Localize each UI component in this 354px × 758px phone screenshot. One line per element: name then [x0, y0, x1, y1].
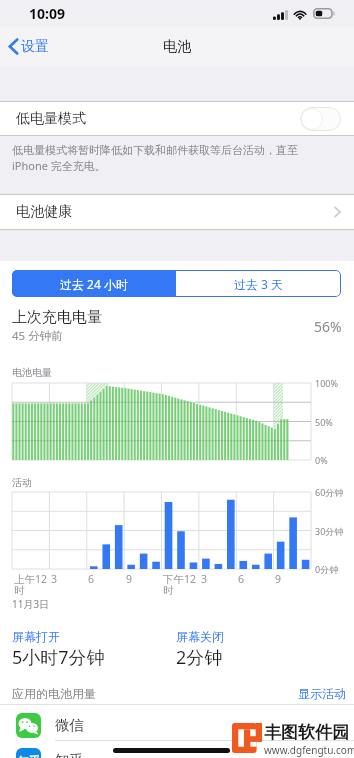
- staticText: 5小时7分钟: [12, 645, 105, 670]
- staticText: 上午12 时: [14, 572, 48, 597]
- staticText: 45 分钟前: [12, 328, 63, 344]
- button[interactable]: 低电量模式: [0, 101, 354, 136]
- staticText: 56%: [314, 317, 342, 336]
- staticText: 6: [238, 572, 245, 586]
- staticText: 9: [275, 572, 282, 586]
- staticText: 100%: [315, 377, 338, 389]
- button[interactable]: 显示活动: [298, 686, 346, 701]
- staticText: 丰图软件园: [264, 722, 349, 743]
- staticText: 过去 24 小时: [60, 276, 128, 292]
- staticText: 电池健康: [16, 203, 72, 221]
- staticText: 低电量模式: [16, 110, 86, 128]
- staticText: 过去 3 天: [234, 276, 284, 292]
- button[interactable]: 低电量模式开关: [300, 107, 341, 131]
- staticText: 50%: [315, 416, 333, 428]
- staticText: 2分钟: [176, 645, 223, 670]
- staticText: 3: [51, 572, 58, 586]
- button[interactable]: 知乎: [0, 745, 354, 758]
- staticText: 微信: [55, 716, 84, 734]
- staticText: 11月3日: [12, 597, 50, 611]
- button[interactable]: 过去 24 小时: [12, 270, 176, 297]
- button[interactable]: 电池健康: [0, 194, 354, 230]
- staticText: 下午12 时: [163, 572, 197, 597]
- staticText: 6: [88, 572, 95, 586]
- staticText: 0分钟: [315, 563, 339, 575]
- staticText: 电池电量: [12, 366, 52, 379]
- staticText: 上次充电电量: [12, 308, 102, 327]
- staticText: 9: [126, 572, 133, 586]
- staticText: 屏幕关闭: [176, 629, 224, 644]
- staticText: 60分钟: [315, 486, 344, 498]
- staticText: 应用的电池用量: [12, 686, 96, 701]
- staticText: 10:09: [29, 4, 65, 23]
- staticText: 低电量模式将暂时降低如下载和邮件获取等后台活动，直至 iPhone 完全充电。: [12, 143, 298, 173]
- button[interactable]: 微信: [0, 710, 354, 740]
- staticText: 屏幕打开: [12, 629, 60, 644]
- staticText: 0%: [315, 454, 328, 466]
- staticText: www.dgfengtu.com: [264, 743, 354, 757]
- staticText: 3: [201, 572, 208, 586]
- staticText: 知乎: [55, 751, 84, 758]
- button[interactable]: 设置: [0, 37, 57, 56]
- staticText: 30分钟: [315, 525, 344, 537]
- button[interactable]: 过去 3 天: [176, 270, 341, 297]
- staticText: 知乎: [18, 754, 40, 758]
- staticText: 活动: [12, 476, 32, 489]
- staticText: 电池: [163, 38, 191, 56]
- staticText: 设置: [21, 38, 49, 56]
